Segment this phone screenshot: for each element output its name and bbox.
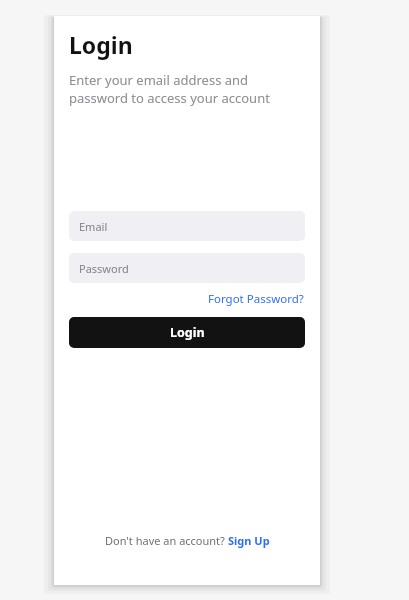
staticText: Sign Up: [228, 533, 270, 548]
staticText: Don't have an account?: [105, 533, 228, 548]
button[interactable]: Forgot Password?: [207, 290, 305, 308]
staticText: Enter your email address and password to…: [69, 71, 270, 107]
button[interactable]: Password input field: [69, 253, 305, 283]
button[interactable]: Sign Up: [228, 533, 270, 548]
staticText: Login: [69, 29, 133, 60]
staticText: Password: [79, 261, 129, 276]
staticText: Email: [79, 219, 108, 234]
button[interactable]: Login: [69, 317, 305, 348]
staticText: Forgot Password?: [208, 291, 304, 307]
staticText: Login: [170, 324, 205, 341]
button[interactable]: Email input field: [69, 211, 305, 241]
